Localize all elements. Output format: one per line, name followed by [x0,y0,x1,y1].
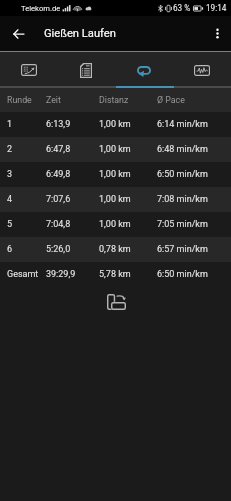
staticText: 2 [7,144,46,155]
staticText: 6:14 min/km [157,119,208,130]
staticText: 6:50 min/km [157,269,208,280]
button[interactable]: 2 [0,137,231,162]
button[interactable]: Map [0,52,57,88]
button[interactable]: Details [57,52,115,88]
staticText: 1,00 km [99,169,157,180]
button[interactable]: 6 [0,237,231,262]
staticText: 19:14 [206,3,227,13]
staticText: 6 [7,244,46,255]
staticText: 63 % [173,3,191,13]
staticText: 1,00 km [99,144,157,155]
button[interactable]: More options [203,16,231,51]
staticText: 6:57 min/km [157,244,208,255]
staticText: Telekom.de [21,4,61,13]
button[interactable]: 3 [0,162,231,187]
staticText: 6:48 min/km [157,144,208,155]
staticText: 1 [7,119,46,130]
button[interactable]: 5 [0,212,231,237]
staticText: 7:04,8 [46,219,99,230]
button[interactable]: 4 [0,187,231,212]
staticText: 1,00 km [99,119,157,130]
button[interactable]: Back [0,16,36,51]
button[interactable]: Laps [115,52,173,88]
button[interactable]: 1 [0,112,231,137]
staticText: 5 [7,219,46,230]
button[interactable]: Chart [173,52,231,88]
staticText: 4 [7,194,46,205]
staticText: 3 [7,169,46,180]
staticText: 5:26,0 [46,244,99,255]
staticText: Distanz [99,95,157,105]
staticText: 6:49,8 [46,169,99,180]
staticText: Runde [7,95,46,105]
staticText: 1,00 km [99,219,157,230]
staticText: 6:50 min/km [157,169,208,180]
staticText: 39:29,9 [46,269,99,280]
button[interactable]: Gesamt [0,262,231,287]
staticText: 7:05 min/km [157,219,208,230]
staticText: 7:07,6 [46,194,99,205]
staticText: Ø Pace [157,95,185,105]
staticText: 7:08 min/km [157,194,208,205]
staticText: 6:47,8 [46,144,99,155]
staticText: 0,78 km [99,244,157,255]
staticText: Gießen Laufen [44,27,116,40]
button[interactable]: Rotate screen [102,288,130,316]
staticText: Zeit [46,95,99,105]
staticText: 5,78 km [99,269,157,280]
staticText: 1,00 km [99,194,157,205]
staticText: 6:13,9 [46,119,99,130]
staticText: Gesamt [7,269,46,280]
